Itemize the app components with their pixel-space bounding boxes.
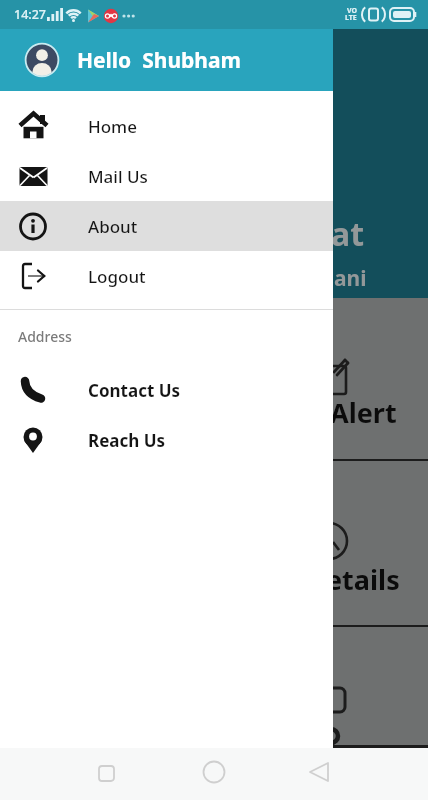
button[interactable]: Reach Us: [0, 415, 333, 465]
staticText: Mail Us: [88, 165, 148, 188]
staticText: Alert: [330, 394, 397, 431]
button[interactable]: Contact Us: [0, 365, 333, 415]
button[interactable]: Logout: [0, 251, 333, 301]
staticText: About: [88, 215, 138, 238]
staticText: Address: [18, 327, 72, 346]
staticText: Hello Shubham: [77, 46, 242, 75]
staticText: etails: [326, 561, 400, 598]
button[interactable]: Home: [0, 101, 333, 151]
staticText: 14:27: [14, 6, 47, 23]
staticText: at: [331, 212, 365, 256]
staticText: Reach Us: [88, 429, 166, 452]
button[interactable]: Mail Us: [0, 151, 333, 201]
staticText: Logout: [88, 265, 146, 288]
staticText: Contact Us: [88, 379, 181, 402]
staticText: LTE: [345, 13, 357, 23]
staticText: VO: [347, 6, 358, 16]
button[interactable]: About: [0, 201, 333, 251]
staticText: ani: [334, 264, 367, 293]
staticText: Home: [88, 115, 137, 138]
